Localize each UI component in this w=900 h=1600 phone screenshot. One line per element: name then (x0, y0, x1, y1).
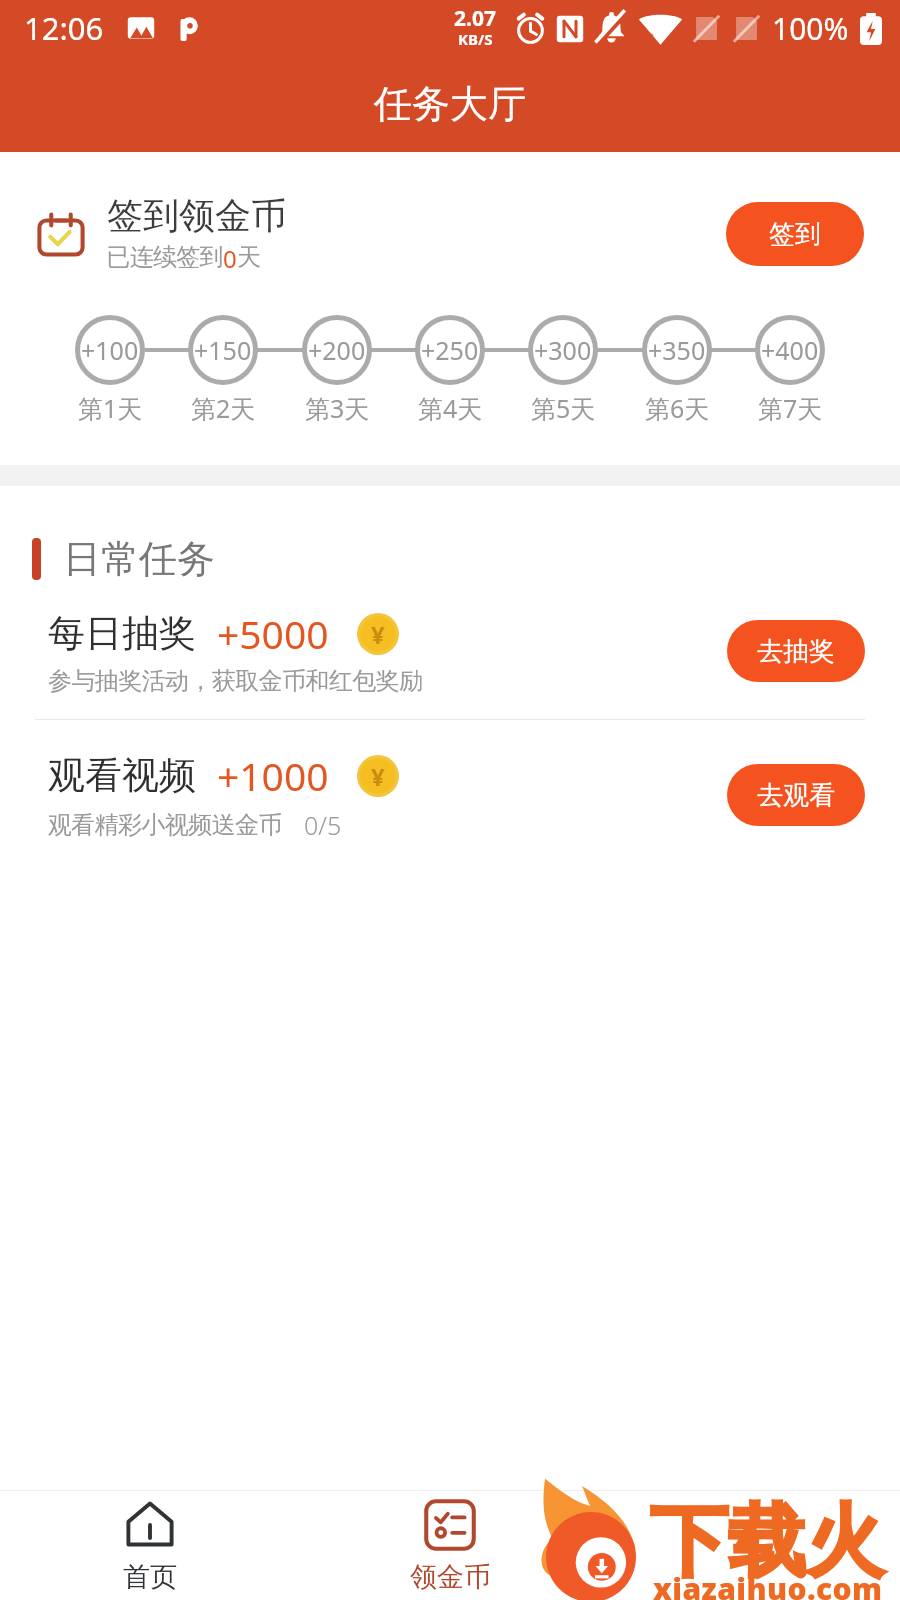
staticText: 观看视频 (48, 752, 196, 799)
staticText: ¥ (371, 760, 385, 793)
button[interactable]: 第7天 (755, 315, 825, 421)
staticText: 第5天 (531, 391, 596, 421)
staticText: 观看精彩小视频送金币 (48, 810, 282, 840)
staticText: 第4天 (418, 391, 483, 421)
staticText: 第2天 (191, 391, 256, 421)
staticText: +200 (308, 333, 366, 367)
button[interactable]: 首页 (0, 1491, 300, 1600)
button[interactable]: 每日抽奖 (0, 583, 900, 719)
staticText: 天 (237, 242, 261, 272)
staticText: 每日抽奖 (48, 610, 196, 657)
button[interactable]: 去观看 (727, 764, 865, 826)
button[interactable]: 观看视频 (0, 720, 900, 870)
staticText: +1000 (217, 749, 329, 802)
staticText: 日常任务 (63, 535, 215, 583)
staticText: 第3天 (305, 391, 370, 421)
staticText: 100% (772, 8, 849, 49)
staticText: +400 (761, 333, 819, 367)
staticText: +5000 (217, 607, 329, 660)
button[interactable]: 签到领金币 (0, 193, 900, 275)
button[interactable]: 第1天 (75, 315, 145, 421)
staticText: +150 (194, 333, 252, 367)
staticText: xiazaihuo.com (653, 1568, 883, 1600)
staticText: 2.07 (454, 4, 496, 33)
button[interactable]: 签到 (726, 202, 864, 266)
staticText: 第1天 (78, 391, 143, 421)
staticText: +100 (81, 333, 139, 367)
staticText: KB/S (458, 29, 493, 49)
staticText: +300 (534, 333, 592, 367)
staticText: 领金币 (410, 1560, 491, 1594)
button[interactable]: 去抽奖 (727, 620, 865, 682)
staticText: 下载火 (650, 1493, 884, 1591)
staticText: 签到 (769, 218, 821, 251)
staticText: 去观看 (757, 779, 835, 812)
staticText: 第7天 (758, 391, 823, 421)
staticText: 参与抽奖活动，获取金币和红包奖励 (48, 666, 423, 696)
button[interactable]: 领金币 (300, 1491, 600, 1600)
staticText: 首页 (123, 1560, 177, 1594)
staticText: 已连续签到 (107, 242, 223, 272)
button[interactable]: 第2天 (188, 315, 258, 421)
staticText: 第6天 (645, 391, 710, 421)
staticText: 任务大厅 (374, 80, 526, 128)
staticText: ¥ (371, 618, 385, 651)
staticText: +250 (421, 333, 479, 367)
button[interactable]: 第5天 (528, 315, 598, 421)
button[interactable]: 第6天 (642, 315, 712, 421)
button[interactable]: 第3天 (302, 315, 372, 421)
staticText: 0/5 (304, 808, 342, 842)
button[interactable]: 第4天 (415, 315, 485, 421)
staticText: 12:06 (24, 7, 104, 49)
staticText: +350 (648, 333, 706, 367)
staticText: 0 (223, 242, 237, 275)
staticText: 签到领金币 (107, 193, 287, 238)
staticText: 去抽奖 (757, 635, 835, 668)
